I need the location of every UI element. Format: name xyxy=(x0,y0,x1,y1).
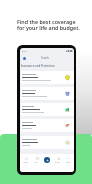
button[interactable]: More xyxy=(63,157,73,163)
button[interactable] xyxy=(21,103,74,116)
staticText: Pay xyxy=(35,161,39,163)
button[interactable] xyxy=(21,119,74,132)
staticText: Find the best coverage for your life and… xyxy=(17,18,80,31)
staticText: More xyxy=(66,161,71,163)
button[interactable]: Pay xyxy=(32,157,42,163)
staticText: Insurance and Protection xyxy=(21,64,55,68)
staticText: 9:41 xyxy=(22,49,27,52)
button[interactable]: Account xyxy=(23,57,26,60)
button[interactable] xyxy=(21,71,74,84)
button[interactable]: Search xyxy=(41,56,50,60)
button[interactable]: Invest xyxy=(53,157,63,163)
button[interactable]: Add xyxy=(42,157,52,163)
button[interactable]: Home xyxy=(21,157,31,163)
button[interactable] xyxy=(21,136,74,149)
staticText: Invest xyxy=(55,161,61,163)
button[interactable] xyxy=(21,87,74,100)
staticText: Home xyxy=(23,161,29,163)
